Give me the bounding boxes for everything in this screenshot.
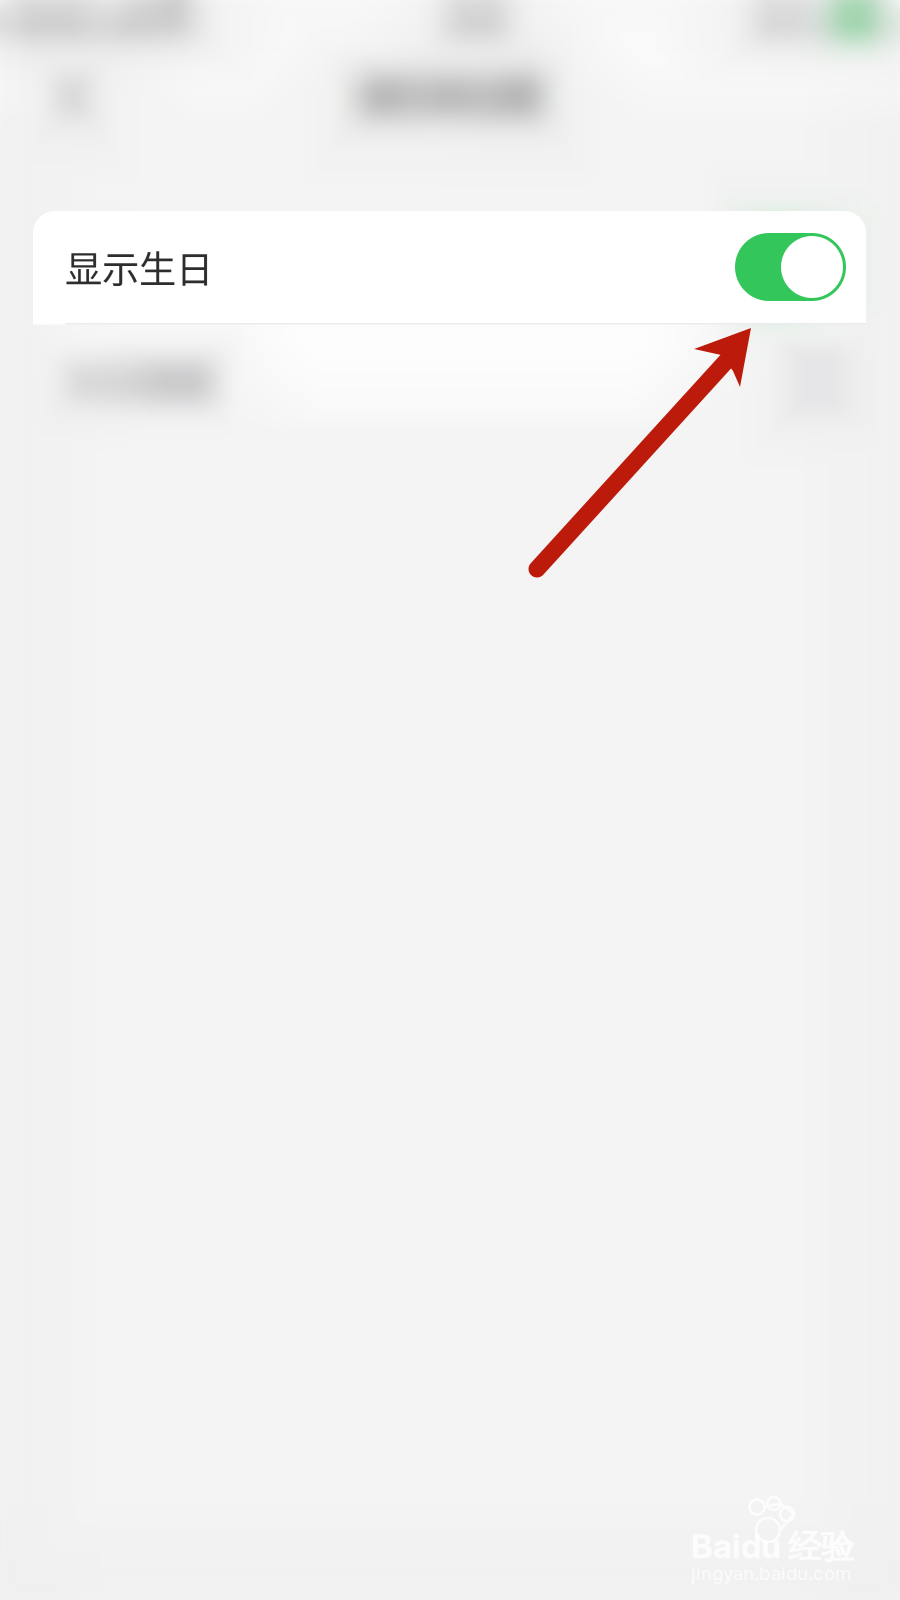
staticText: 9:41: [449, 5, 503, 39]
staticText: jingyan.baidu.com: [691, 1562, 851, 1585]
staticText: Baidu 经验: [691, 1526, 854, 1568]
staticText: 通讯录设置: [357, 67, 542, 122]
staticText: 生日提醒: [65, 353, 213, 407]
button[interactable]: 返回: [0, 44, 151, 145]
staticText: 显示生日: [65, 240, 213, 294]
staticText: 显示生日: [65, 240, 213, 294]
button[interactable]: 显示生日: [33, 211, 866, 324]
staticText: 中国移动: [4, 5, 100, 39]
